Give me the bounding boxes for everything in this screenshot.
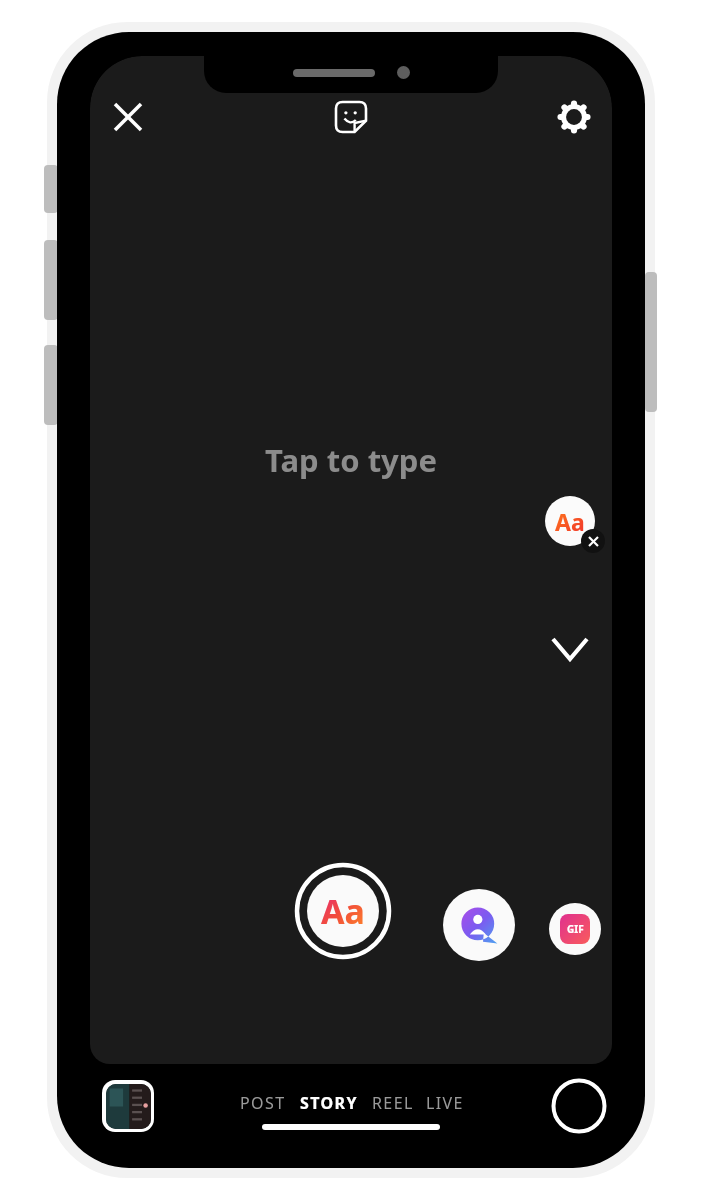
staticText: Tap to type [265,439,437,481]
staticText: STORY [300,1092,358,1114]
button[interactable]: LIVE [426,1092,464,1114]
button[interactable]: Avatar sticker [443,889,515,961]
button[interactable]: Settings [546,89,602,145]
button[interactable]: Text style [545,496,605,556]
button[interactable]: REEL [372,1092,414,1114]
button[interactable]: Collapse [542,621,598,677]
button[interactable]: POST [240,1092,286,1114]
button[interactable]: Stickers [323,89,379,145]
button[interactable]: Capture [551,1078,607,1134]
staticText: Aa [555,506,585,537]
staticText: GIF [567,922,584,936]
button[interactable]: GIF [549,903,601,955]
staticText: POST [240,1092,286,1114]
button[interactable]: Gallery [102,1080,154,1132]
staticText: REEL [372,1092,414,1114]
staticText: Aa [321,888,365,934]
button[interactable]: STORY [300,1092,358,1114]
button[interactable]: Tap to type [265,439,437,481]
staticText: LIVE [426,1092,464,1114]
button[interactable]: Close [100,89,156,145]
button[interactable]: Text tool [295,863,391,959]
